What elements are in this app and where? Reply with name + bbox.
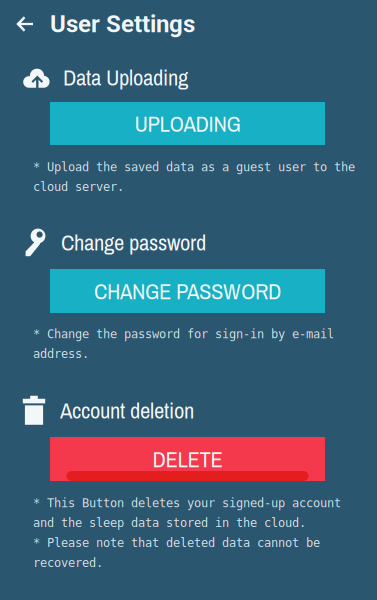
button[interactable]: CHANGE PASSWORD [50,269,325,313]
button[interactable]: DELETE [50,437,325,481]
staticText: * This Button deletes your signed-up acc… [33,496,341,510]
staticText: cloud server. [33,180,124,194]
staticText: CHANGE PASSWORD [94,276,281,306]
staticText: * Please note that deleted data cannot b… [33,536,320,550]
staticText: UPLOADING [134,108,240,139]
staticText: Change password [61,227,206,257]
staticText: DELETE [152,444,222,474]
staticText: * Upload the saved data as a guest user … [33,160,355,174]
button[interactable]: UPLOADING [50,102,325,145]
staticText: * Change the password for sign-in by e-m… [33,327,334,341]
staticText: User Settings [50,10,195,38]
staticText: address. [33,347,89,361]
staticText: and the sleep data stored in the cloud. [33,516,306,530]
button[interactable]: Back [0,2,50,46]
staticText: Account deletion [60,395,194,425]
staticText: Data Uploading [63,62,188,92]
staticText: recovered. [33,556,103,570]
